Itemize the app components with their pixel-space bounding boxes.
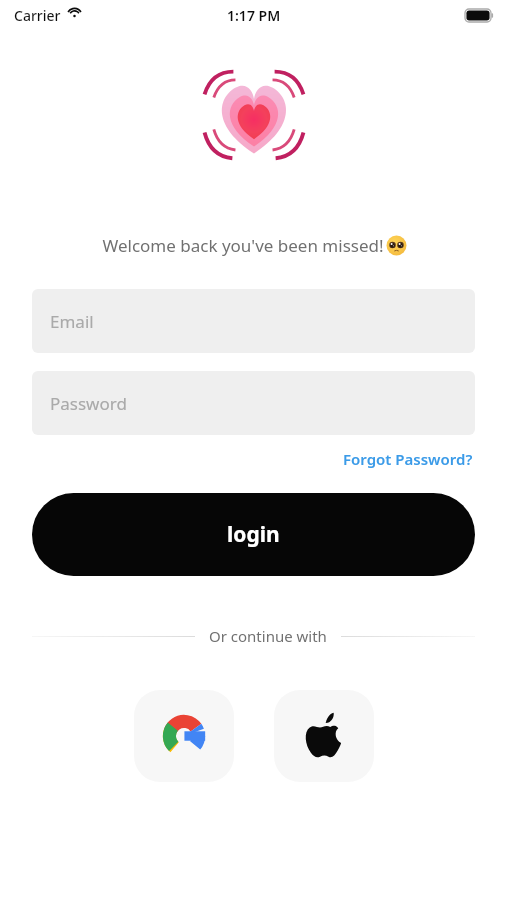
staticText: login [227, 520, 280, 549]
staticText: Welcome back you've been missed! [100, 234, 386, 257]
button[interactable]: Email [32, 289, 475, 353]
button[interactable]: login [32, 493, 475, 576]
button[interactable]: Forgot Password? [341, 447, 475, 471]
staticText: Carrier [14, 6, 61, 25]
staticText: Email [50, 310, 94, 333]
button[interactable]: Password [32, 371, 475, 435]
staticText: Password [50, 392, 127, 415]
button[interactable]: Continue with Apple [274, 690, 374, 782]
button[interactable]: Continue with Google [134, 690, 234, 782]
staticText: Or continue with [209, 626, 327, 646]
staticText: Forgot Password? [343, 449, 473, 469]
staticText: 1:17 PM [227, 6, 281, 25]
